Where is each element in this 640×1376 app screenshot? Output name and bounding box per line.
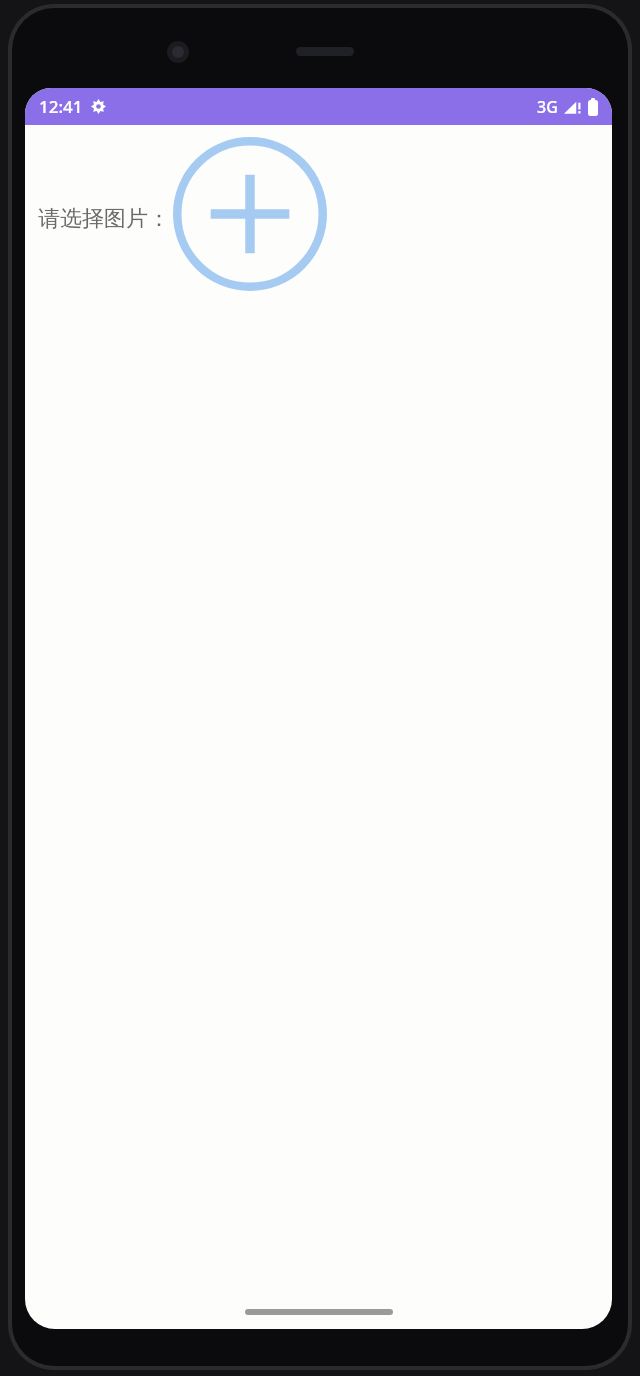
button[interactable]: Home — [245, 1309, 393, 1315]
staticText: 3G — [537, 96, 558, 118]
staticText: 12:41 — [39, 95, 83, 118]
button[interactable]: 添加图片 — [172, 136, 328, 292]
staticText: 请选择图片： — [38, 205, 170, 233]
